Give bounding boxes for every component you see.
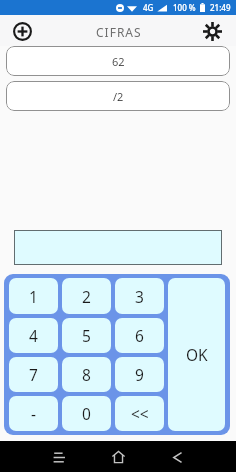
button[interactable]: << [115, 396, 164, 431]
button[interactable]: 5 [62, 318, 111, 353]
button[interactable]: Back [163, 443, 191, 471]
button[interactable]: 3 [115, 278, 164, 314]
staticText: CIFRAS [96, 24, 142, 40]
staticText: << [131, 403, 149, 424]
staticText: - [31, 403, 36, 424]
staticText: 1 [29, 286, 38, 307]
staticText: 21:49 [210, 2, 231, 13]
staticText: 5 [82, 325, 91, 346]
staticText: 9 [135, 364, 144, 385]
staticText: 3 [135, 286, 144, 307]
staticText: 2 [82, 286, 91, 307]
staticText: 7 [29, 364, 38, 385]
button[interactable]: 1 [9, 278, 58, 314]
button[interactable]: 0 [62, 396, 111, 431]
staticText: 62 [112, 54, 125, 69]
button[interactable]: 6 [115, 318, 164, 353]
button[interactable]: Add [13, 22, 32, 41]
button[interactable]: 7 [9, 357, 58, 392]
button[interactable]: 2 [62, 278, 111, 314]
button[interactable]: - [9, 396, 58, 431]
button[interactable]: Recents [45, 443, 73, 471]
staticText: 6 [135, 325, 144, 346]
button[interactable]: /2 [6, 81, 230, 111]
button[interactable]: Home [104, 443, 132, 471]
staticText: 8 [82, 364, 91, 385]
button[interactable]: 4 [9, 318, 58, 353]
button[interactable]: 9 [115, 357, 164, 392]
staticText: 100 % [173, 2, 196, 13]
button[interactable]: 62 [6, 46, 230, 76]
staticText: /2 [113, 89, 124, 104]
staticText: 0 [82, 403, 91, 424]
staticText: OK [186, 344, 208, 365]
button[interactable]: Brightness [203, 22, 222, 41]
button[interactable]: OK [168, 278, 225, 431]
button[interactable] [14, 230, 222, 265]
staticText: 4 [29, 325, 38, 346]
button[interactable]: 8 [62, 357, 111, 392]
staticText: 4G [143, 2, 154, 13]
